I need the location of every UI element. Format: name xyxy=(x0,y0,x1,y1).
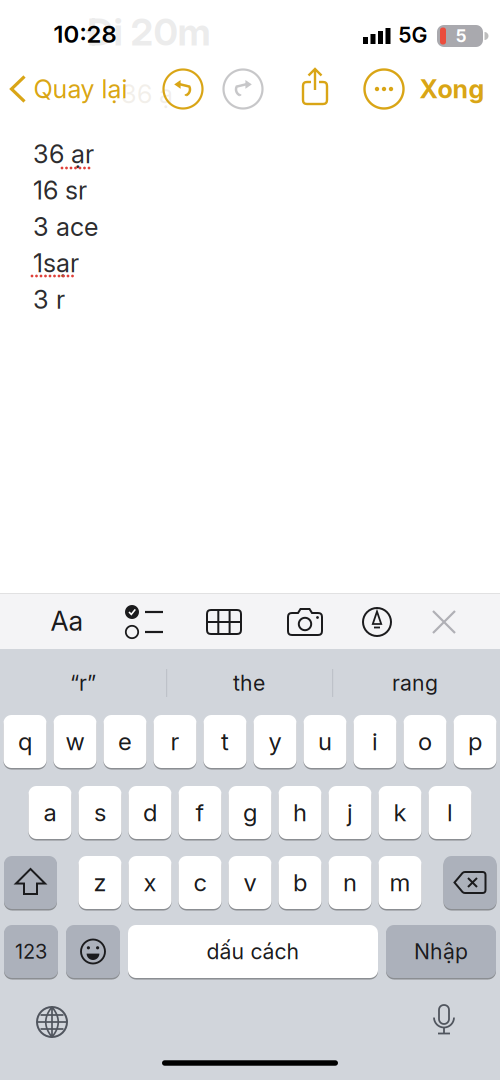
staticText: q xyxy=(18,727,32,756)
staticText: m xyxy=(389,868,410,897)
staticText: 36 ạ xyxy=(121,79,173,109)
button[interactable]: Quay lại xyxy=(8,74,127,104)
staticText: t xyxy=(221,727,229,756)
button[interactable]: v xyxy=(228,855,271,910)
staticText: dấu cách xyxy=(206,939,299,964)
staticText: d xyxy=(143,798,157,827)
staticText: o xyxy=(418,727,432,756)
staticText: Nhập xyxy=(414,939,468,964)
staticText: b xyxy=(293,868,307,897)
button[interactable]: Redo xyxy=(222,68,264,110)
staticText: s xyxy=(94,798,106,827)
button[interactable]: More xyxy=(363,68,405,110)
staticText: g xyxy=(243,798,257,827)
staticText: “r” xyxy=(70,670,96,696)
staticText: 5 xyxy=(455,26,466,46)
button[interactable]: Close xyxy=(431,609,457,635)
staticText: 3 ace xyxy=(33,212,98,242)
staticText: u xyxy=(318,727,332,756)
staticText: p xyxy=(468,727,482,756)
button[interactable]: h xyxy=(278,785,321,840)
button[interactable]: rang xyxy=(340,660,490,706)
button[interactable]: Nhập xyxy=(386,924,496,979)
staticText: x xyxy=(143,868,156,897)
staticText: l xyxy=(447,798,453,827)
staticText: 1sạr xyxy=(33,248,79,278)
staticText: Aa xyxy=(50,605,83,637)
button[interactable]: the xyxy=(174,660,324,706)
button[interactable]: Shift xyxy=(4,855,57,910)
button[interactable]: b xyxy=(278,855,321,910)
button[interactable]: x xyxy=(128,855,171,910)
button[interactable]: c xyxy=(178,855,221,910)
button[interactable]: w xyxy=(53,714,96,769)
button[interactable]: s xyxy=(78,785,121,840)
staticText: 5G xyxy=(398,22,427,48)
button[interactable]: Undo xyxy=(162,68,204,110)
staticText: 36 ạr xyxy=(33,139,94,169)
button[interactable]: f xyxy=(178,785,221,840)
button[interactable]: u xyxy=(303,714,346,769)
button[interactable]: z xyxy=(78,855,121,910)
staticText: 16 sr xyxy=(33,175,87,205)
button[interactable]: t xyxy=(203,714,246,769)
button[interactable]: q xyxy=(3,714,46,769)
button[interactable]: Dictation xyxy=(432,1004,456,1036)
button[interactable]: j xyxy=(328,785,371,840)
button[interactable]: Delete xyxy=(443,855,496,910)
staticText: i xyxy=(372,727,378,756)
staticText: Đi 20m xyxy=(85,10,210,54)
staticText: the xyxy=(233,670,265,696)
staticText: 10:28 xyxy=(53,20,116,48)
button[interactable]: n xyxy=(328,855,371,910)
staticText: k xyxy=(393,798,406,827)
staticText: c xyxy=(193,868,206,897)
button[interactable]: k xyxy=(378,785,421,840)
button[interactable]: d xyxy=(128,785,171,840)
button[interactable]: y xyxy=(253,714,296,769)
staticText: Xong xyxy=(419,74,484,104)
button[interactable]: o xyxy=(403,714,446,769)
button[interactable]: Next keyboard xyxy=(36,1006,68,1038)
staticText: rang xyxy=(392,670,438,696)
button[interactable]: Share xyxy=(300,66,330,108)
button[interactable]: dấu cách xyxy=(128,924,378,979)
staticText: h xyxy=(293,798,307,827)
staticText: 123 xyxy=(15,940,47,963)
button[interactable]: Format xyxy=(39,599,95,643)
staticText: n xyxy=(343,868,357,897)
button[interactable]: p xyxy=(453,714,496,769)
button[interactable]: l xyxy=(428,785,471,840)
staticText: e xyxy=(118,727,132,756)
staticText: 3 r xyxy=(33,284,65,314)
button[interactable]: Table xyxy=(206,601,242,643)
button[interactable]: i xyxy=(353,714,396,769)
staticText: w xyxy=(65,727,84,756)
button[interactable]: “r” xyxy=(8,660,158,706)
button[interactable]: r xyxy=(153,714,196,769)
button[interactable]: Checklist xyxy=(124,601,164,643)
button[interactable]: e xyxy=(103,714,146,769)
button[interactable]: 123 xyxy=(4,924,58,979)
button[interactable]: Emoji xyxy=(66,924,120,979)
staticText: y xyxy=(268,727,281,756)
staticText: f xyxy=(195,798,204,827)
button[interactable]: Camera xyxy=(287,605,323,639)
staticText: v xyxy=(243,868,256,897)
button[interactable]: g xyxy=(228,785,271,840)
staticText: Quay lại xyxy=(33,74,127,104)
button[interactable]: Xong xyxy=(407,69,497,109)
button[interactable]: Markup xyxy=(362,607,392,637)
button[interactable]: m xyxy=(378,855,421,910)
staticText: j xyxy=(347,798,353,827)
button[interactable]: a xyxy=(28,785,71,840)
staticText: a xyxy=(43,798,56,827)
staticText: z xyxy=(93,868,106,897)
staticText: r xyxy=(170,727,179,756)
